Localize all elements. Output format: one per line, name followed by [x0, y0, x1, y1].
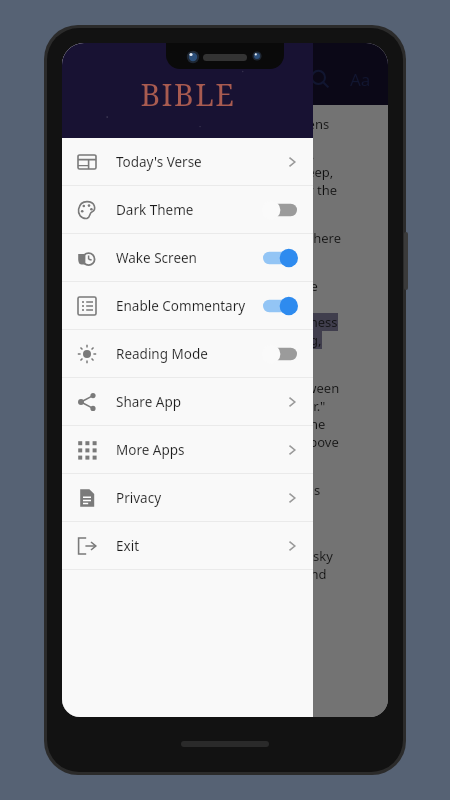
staticText: So God made the vault and separated the: [72, 415, 326, 433]
staticText: evening, and there was morning - the: [72, 499, 301, 517]
staticText: Exit: [116, 537, 285, 555]
button[interactable]: Dark Theme: [62, 186, 313, 233]
staticText: Dark Theme: [116, 201, 261, 219]
staticText: Reading Mode: [116, 345, 261, 363]
staticText: Today's Verse: [116, 153, 285, 171]
staticText: waters.: [72, 199, 117, 217]
staticText: And God said, "Let there be light," and …: [72, 229, 342, 247]
button[interactable]: Wake Screen: [62, 234, 313, 281]
staticText: God called the vault "sky." And there wa…: [72, 481, 321, 499]
staticText: the waters to separate water from water.…: [72, 397, 326, 415]
staticText: Wake Screen: [116, 249, 261, 267]
staticText: water under the vault from the water abo…: [72, 433, 339, 451]
staticText: Privacy: [116, 489, 285, 507]
staticText: Aa: [350, 68, 371, 91]
staticText: BIBLE: [140, 74, 236, 115]
staticText: be gathered to one place, and dry ground: [72, 565, 327, 583]
button[interactable]: Today's Verse: [62, 138, 313, 185]
staticText: God saw that the light was good, and he: [72, 277, 318, 295]
staticText: In the beginning God created the heavens: [72, 115, 330, 133]
staticText: separated the light from the darkness.: [72, 295, 307, 313]
staticText: was light.: [72, 247, 131, 265]
staticText: And God said, "Let the water under the s…: [72, 547, 333, 565]
staticText: he called "night." And there was evening…: [72, 331, 322, 349]
staticText: and there was morning - the first day.: [72, 349, 302, 367]
button[interactable]: Search: [300, 59, 340, 99]
staticText: God called the light "day," and the dark…: [72, 313, 338, 331]
button[interactable]: Text size: [340, 59, 380, 99]
staticText: More Apps: [116, 441, 285, 459]
button[interactable]: Enable Commentary: [62, 282, 313, 329]
staticText: second day.: [72, 517, 144, 535]
button[interactable]: Reading Mode: [62, 330, 313, 377]
staticText: Share App: [116, 393, 285, 411]
staticText: darkness was over the surface of the dee…: [72, 163, 334, 181]
button[interactable]: Privacy: [62, 474, 313, 521]
staticText: And God said, "Let there be a vault betw…: [72, 379, 340, 397]
button[interactable]: More Apps: [62, 426, 313, 473]
staticText: and the Spirit of God was hovering over …: [72, 181, 338, 199]
button[interactable]: Share App: [62, 378, 313, 425]
staticText: Now the earth was formless and empty,: [72, 145, 315, 163]
button[interactable]: Exit: [62, 522, 313, 569]
staticText: it. And it was so.: [72, 451, 171, 469]
staticText: Enable Commentary: [116, 297, 261, 315]
